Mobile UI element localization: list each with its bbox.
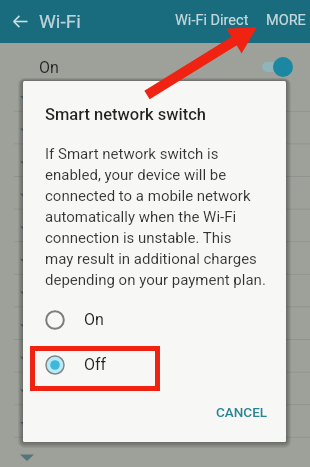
staticText: Wi-Fi Direct [175,12,249,29]
staticText: MORE [266,12,306,29]
staticText: connection is unstable. This [45,229,232,247]
staticText: Smart network switch [45,105,206,124]
staticText: Wi-Fi [39,10,81,32]
staticText: connected to a mobile network [45,187,251,205]
button[interactable]: On [23,297,286,342]
staticText: enabled, your device will be [45,166,227,184]
staticText: Off [84,355,107,374]
staticText: depending on your payment plan. [45,271,266,289]
staticText: CANCEL [216,404,268,420]
button[interactable]: Wi-Fi Direct [171,0,253,42]
staticText: If Smart network switch is [45,145,219,163]
staticText: may result in additional charges [45,250,257,268]
staticText: On [39,58,59,77]
staticText: automatically when the Wi-Fi [45,208,237,226]
button[interactable]: Off [23,342,286,387]
staticText: On [84,310,104,329]
button[interactable]: Back [6,0,34,43]
button[interactable]: MORE [262,0,310,42]
button[interactable]: CANCEL [205,394,279,430]
